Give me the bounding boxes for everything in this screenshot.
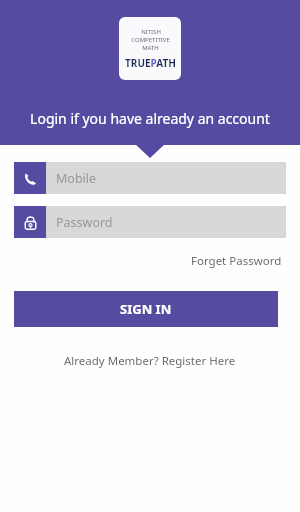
other: Mobile number: [14, 162, 46, 194]
button[interactable]: Mobile number: [14, 162, 286, 194]
staticText: MATH: [142, 44, 159, 52]
button[interactable]: Already Member? Register Here: [58, 349, 242, 373]
staticText: Forget Password: [191, 253, 282, 269]
button[interactable]: Forget Password: [187, 250, 286, 272]
staticText: Login if you have already an account: [30, 109, 270, 128]
staticText: Already Member? Register Here: [64, 353, 236, 369]
button[interactable]: Password: [14, 206, 286, 238]
other: Password: [14, 206, 46, 238]
staticText: TRUEPATH: [125, 56, 176, 70]
button[interactable]: SIGN IN: [14, 291, 278, 327]
staticText: COMPETITIVE: [131, 36, 170, 44]
staticText: NITISH: [141, 28, 161, 36]
staticText: Password: [56, 214, 113, 231]
staticText: Mobile: [56, 170, 97, 187]
staticText: SIGN IN: [120, 300, 172, 318]
